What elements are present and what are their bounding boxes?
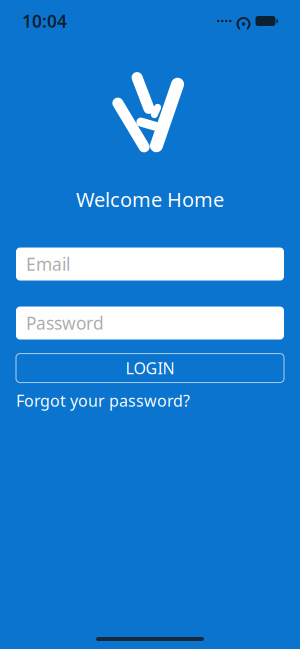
staticText: Email [26,253,70,276]
staticText: Forgot your password? [16,390,190,411]
button[interactable]: Password [16,307,284,340]
button[interactable]: LOGIN [16,354,284,383]
staticText: LOGIN [125,357,174,379]
button[interactable]: Forgot your password? [16,392,284,410]
staticText: Welcome Home [76,186,224,213]
staticText: 10:04 [22,9,67,32]
staticText: Password [26,312,104,335]
button[interactable]: Email [16,248,284,281]
